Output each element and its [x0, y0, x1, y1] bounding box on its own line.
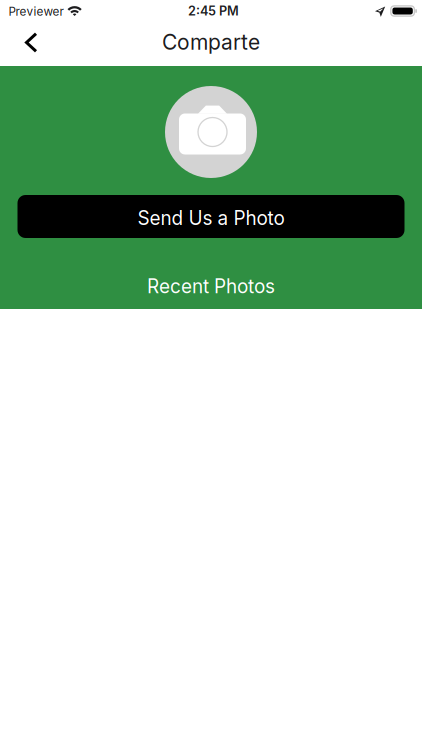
button[interactable]: Recent Photos: [147, 275, 275, 298]
staticText: 2:45 PM: [188, 3, 239, 19]
staticText: Previewer: [8, 4, 63, 19]
staticText: Comparte: [162, 29, 260, 55]
staticText: Recent Photos: [147, 275, 275, 298]
staticText: Send Us a Photo: [137, 206, 284, 229]
button[interactable]: Send Us a Photo: [17, 195, 404, 238]
button[interactable]: Back: [0, 25, 49, 65]
